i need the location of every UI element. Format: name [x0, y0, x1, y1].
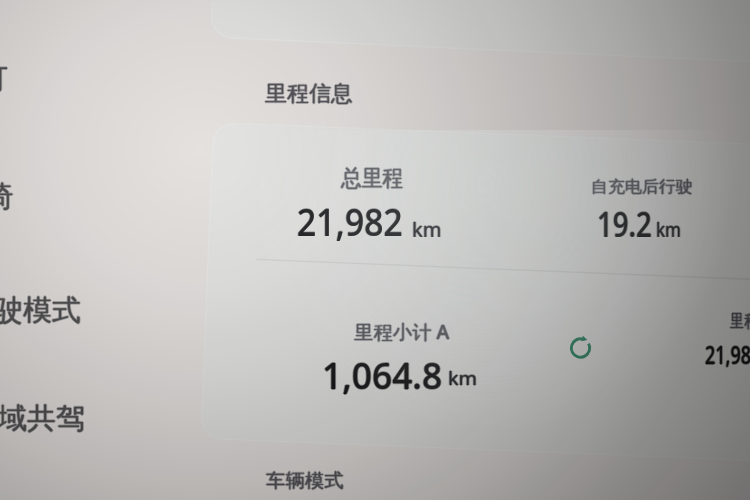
- staticText: 里程小计 A: [354, 320, 450, 346]
- staticText: 座椅: [0, 177, 13, 214]
- staticText: 里程信息: [265, 81, 353, 109]
- staticText: 座椅: [0, 178, 13, 215]
- staticText: 车辆模式: [266, 470, 343, 494]
- staticText: km: [413, 216, 443, 243]
- staticText: 区域共驾: [0, 399, 85, 436]
- staticText: 区域共驾: [0, 400, 84, 437]
- staticText: km: [412, 216, 442, 243]
- staticText: 19.2: [597, 201, 652, 247]
- staticText: 车辆模式: [265, 469, 342, 493]
- staticText: 19.2: [597, 200, 652, 246]
- staticText: 里程小计 A: [353, 319, 449, 345]
- staticText: 里程小计 B: [730, 307, 750, 332]
- button[interactable]: 座椅: [0, 178, 37, 220]
- staticText: 座椅: [0, 178, 12, 215]
- staticText: 车辆模式: [266, 468, 343, 492]
- staticText: 21,982: [296, 195, 403, 247]
- staticText: 车灯: [0, 59, 8, 96]
- staticText: 里程小计 B: [729, 308, 750, 333]
- staticText: 座椅: [0, 178, 14, 215]
- staticText: 21,982: [297, 195, 404, 247]
- staticText: 车灯: [0, 61, 8, 98]
- staticText: 21,982: [297, 195, 404, 247]
- staticText: km: [657, 216, 682, 243]
- button[interactable]: 区域共驾: [0, 400, 109, 442]
- staticText: 1,064.8: [323, 351, 443, 400]
- staticText: 区域共驾: [0, 400, 85, 437]
- staticText: 1,064.8: [322, 352, 442, 401]
- staticText: 自充电后行驶: [591, 176, 693, 196]
- staticText: 21,982: [705, 336, 750, 370]
- staticText: km: [448, 367, 478, 392]
- staticText: 21,982: [706, 337, 750, 371]
- staticText: 21,982: [705, 337, 750, 371]
- staticText: 1,064.8: [322, 351, 442, 400]
- staticText: 21,982: [705, 338, 750, 372]
- staticText: 驾驶模式: [0, 292, 82, 329]
- staticText: km: [412, 215, 442, 242]
- staticText: km: [655, 216, 680, 243]
- staticText: 驾驶模式: [0, 292, 80, 329]
- staticText: 车辆模式: [266, 469, 343, 493]
- button[interactable]: Reset trip meter A: [560, 328, 601, 368]
- staticText: 驾驶模式: [0, 292, 81, 329]
- staticText: km: [411, 216, 441, 243]
- staticText: 里程信息: [265, 80, 353, 108]
- staticText: 车灯: [0, 60, 7, 97]
- staticText: 21,982: [704, 337, 750, 371]
- staticText: 车灯: [0, 60, 8, 97]
- staticText: 里程小计 A: [354, 319, 450, 345]
- staticText: 区域共驾: [0, 400, 86, 437]
- staticText: 里程信息: [266, 80, 354, 108]
- staticText: km: [656, 216, 681, 243]
- staticText: 21,982: [297, 195, 404, 247]
- button[interactable]: 驾驶模式: [0, 292, 105, 334]
- staticText: km: [412, 216, 442, 243]
- staticText: 里程信息: [265, 79, 353, 107]
- staticText: 总里程: [341, 165, 403, 194]
- staticText: km: [656, 215, 681, 242]
- staticText: 里程小计 A: [354, 318, 450, 344]
- staticText: 总里程: [342, 164, 404, 193]
- staticText: km: [447, 366, 477, 391]
- staticText: 总里程: [341, 164, 403, 193]
- staticText: km: [449, 366, 479, 391]
- staticText: 车灯: [0, 60, 9, 97]
- staticText: km: [656, 216, 681, 243]
- staticText: 19.2: [598, 201, 653, 247]
- staticText: 总里程: [341, 163, 403, 192]
- staticText: 自充电后行驶: [590, 177, 692, 197]
- staticText: 座椅: [0, 179, 13, 216]
- staticText: 19.2: [597, 201, 652, 247]
- staticText: km: [448, 366, 478, 391]
- staticText: 总里程: [340, 164, 402, 193]
- button[interactable]: 车灯: [0, 60, 32, 102]
- staticText: 19.2: [596, 201, 651, 247]
- staticText: 里程小计 B: [730, 308, 750, 333]
- staticText: 车辆模式: [267, 469, 344, 493]
- staticText: 里程小计 B: [730, 309, 750, 334]
- staticText: 自充电后行驶: [592, 177, 694, 197]
- staticText: 1,064.8: [322, 350, 442, 399]
- staticText: 21,982: [297, 194, 404, 246]
- staticText: 驾驶模式: [0, 291, 81, 328]
- staticText: 区域共驾: [0, 401, 85, 438]
- staticText: 驾驶模式: [0, 293, 81, 330]
- staticText: 自充电后行驶: [591, 177, 693, 197]
- staticText: km: [448, 365, 478, 390]
- staticText: 里程小计 A: [355, 319, 451, 345]
- staticText: 自充电后行驶: [591, 178, 693, 198]
- staticText: 里程小计 B: [731, 308, 750, 333]
- staticText: 1,064.8: [321, 351, 441, 400]
- staticText: 里程信息: [264, 80, 352, 108]
